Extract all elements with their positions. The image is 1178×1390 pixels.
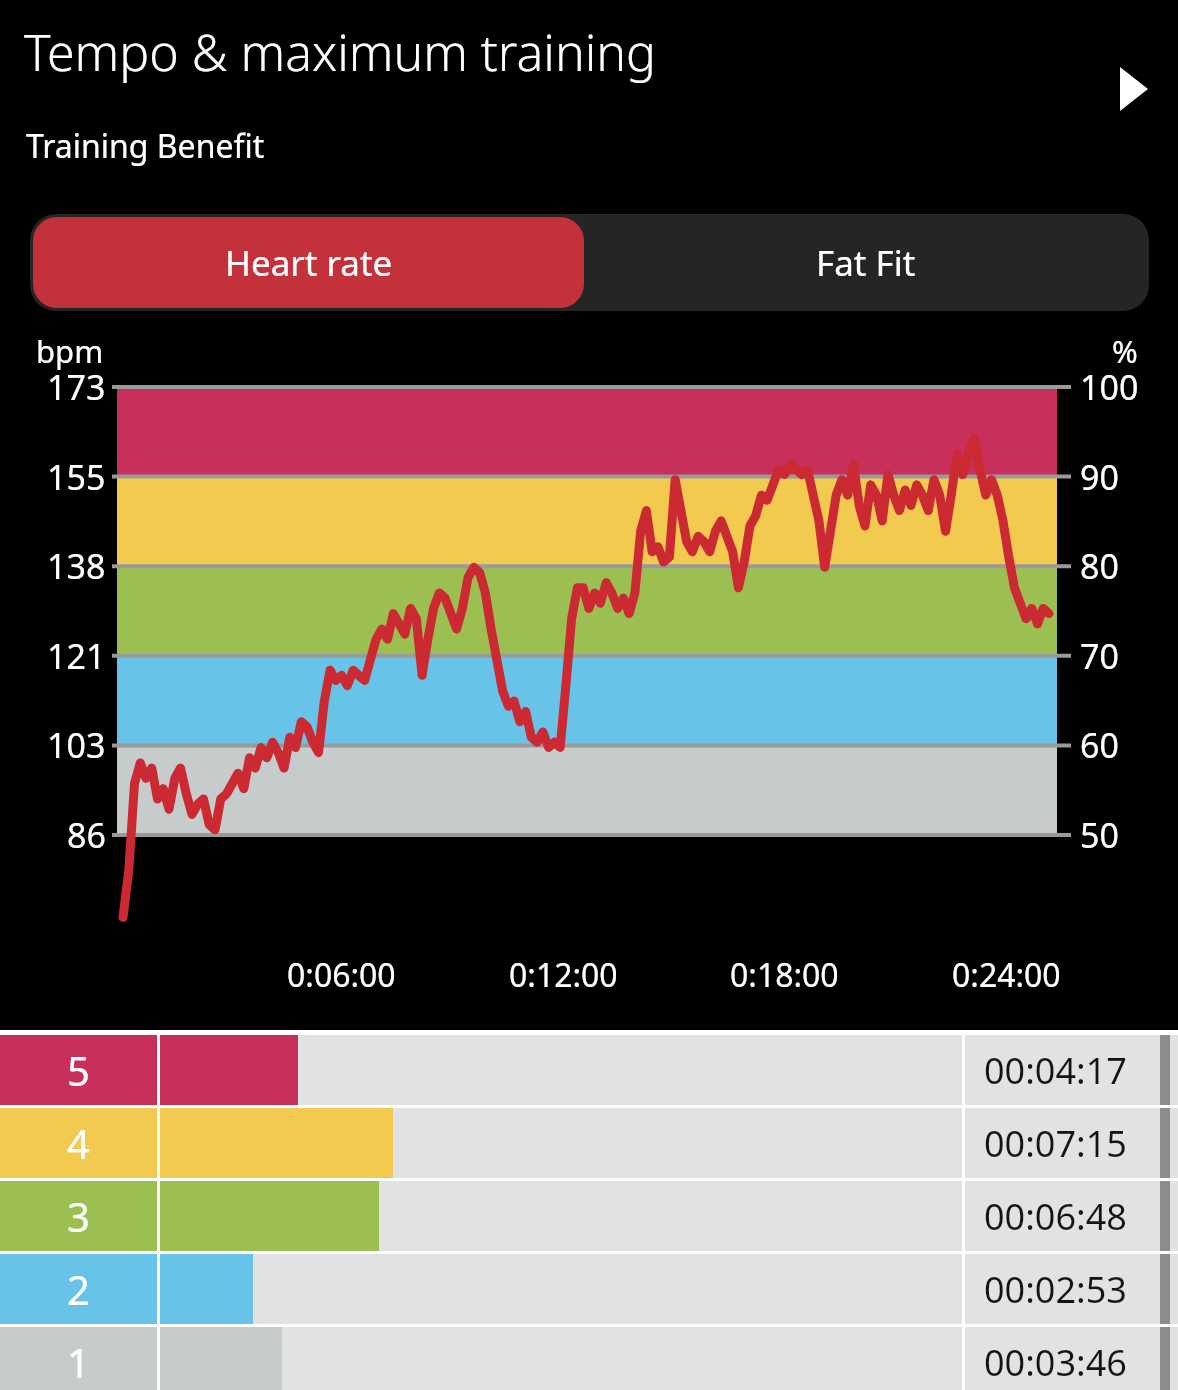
staticText: 1 (67, 1335, 90, 1389)
staticText: 0:12:00 (509, 953, 618, 997)
staticText: 00:02:53 (984, 1265, 1127, 1314)
staticText: 86 (67, 812, 106, 858)
button[interactable]: 1 (0, 1327, 1178, 1390)
staticText: 00:04:17 (984, 1046, 1127, 1095)
staticText: 155 (47, 454, 106, 500)
button[interactable]: Next (1094, 44, 1174, 134)
staticText: Fat Fit (816, 239, 916, 287)
staticText: 4 (67, 1116, 90, 1170)
staticText: 0:06:00 (287, 953, 396, 997)
button[interactable]: Fat Fit (586, 217, 1146, 308)
staticText: 3 (67, 1189, 90, 1243)
staticText: 100 (1080, 364, 1139, 410)
staticText: 00:06:48 (984, 1192, 1127, 1241)
button[interactable]: 2 (0, 1254, 1178, 1324)
staticText: 00:03:46 (984, 1338, 1127, 1387)
staticText: 103 (47, 722, 106, 768)
button[interactable]: Heart rate (33, 217, 584, 308)
staticText: Tempo & maximum training (24, 18, 656, 86)
staticText: 90 (1080, 454, 1119, 500)
staticText: 121 (47, 633, 106, 679)
staticText: bpm (36, 330, 104, 372)
staticText: Heart rate (225, 239, 393, 287)
staticText: 2 (67, 1262, 90, 1316)
staticText: Training Benefit (26, 124, 265, 168)
staticText: 50 (1080, 812, 1119, 858)
button[interactable]: 4 (0, 1108, 1178, 1178)
button[interactable]: 3 (0, 1181, 1178, 1251)
staticText: 60 (1080, 722, 1119, 768)
staticText: 5 (67, 1043, 90, 1097)
staticText: % (1112, 330, 1138, 372)
staticText: 70 (1080, 633, 1119, 679)
staticText: 138 (47, 543, 106, 589)
button[interactable]: 5 (0, 1035, 1178, 1105)
staticText: 0:18:00 (730, 953, 839, 997)
staticText: 80 (1080, 543, 1119, 589)
staticText: 173 (47, 364, 106, 410)
staticText: 0:24:00 (952, 953, 1061, 997)
staticText: 00:07:15 (984, 1119, 1127, 1168)
